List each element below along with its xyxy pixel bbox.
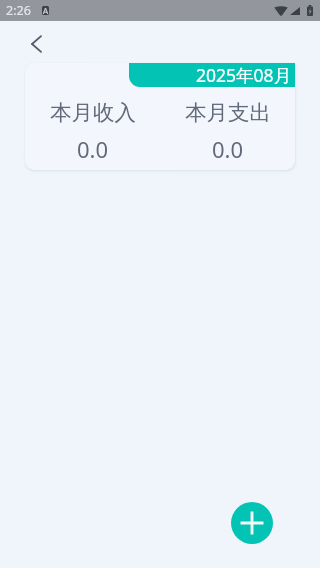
staticText: 0.0: [212, 134, 244, 164]
button[interactable]: Add: [231, 502, 273, 544]
button[interactable]: Back: [21, 29, 51, 59]
staticText: 0.0: [77, 134, 109, 164]
staticText: 本月支出: [185, 99, 271, 126]
staticText: 2025年08月: [196, 63, 292, 84]
button[interactable]: 2025年08月: [129, 63, 295, 87]
staticText: 2:26: [6, 2, 31, 19]
staticText: 本月收入: [50, 99, 136, 126]
